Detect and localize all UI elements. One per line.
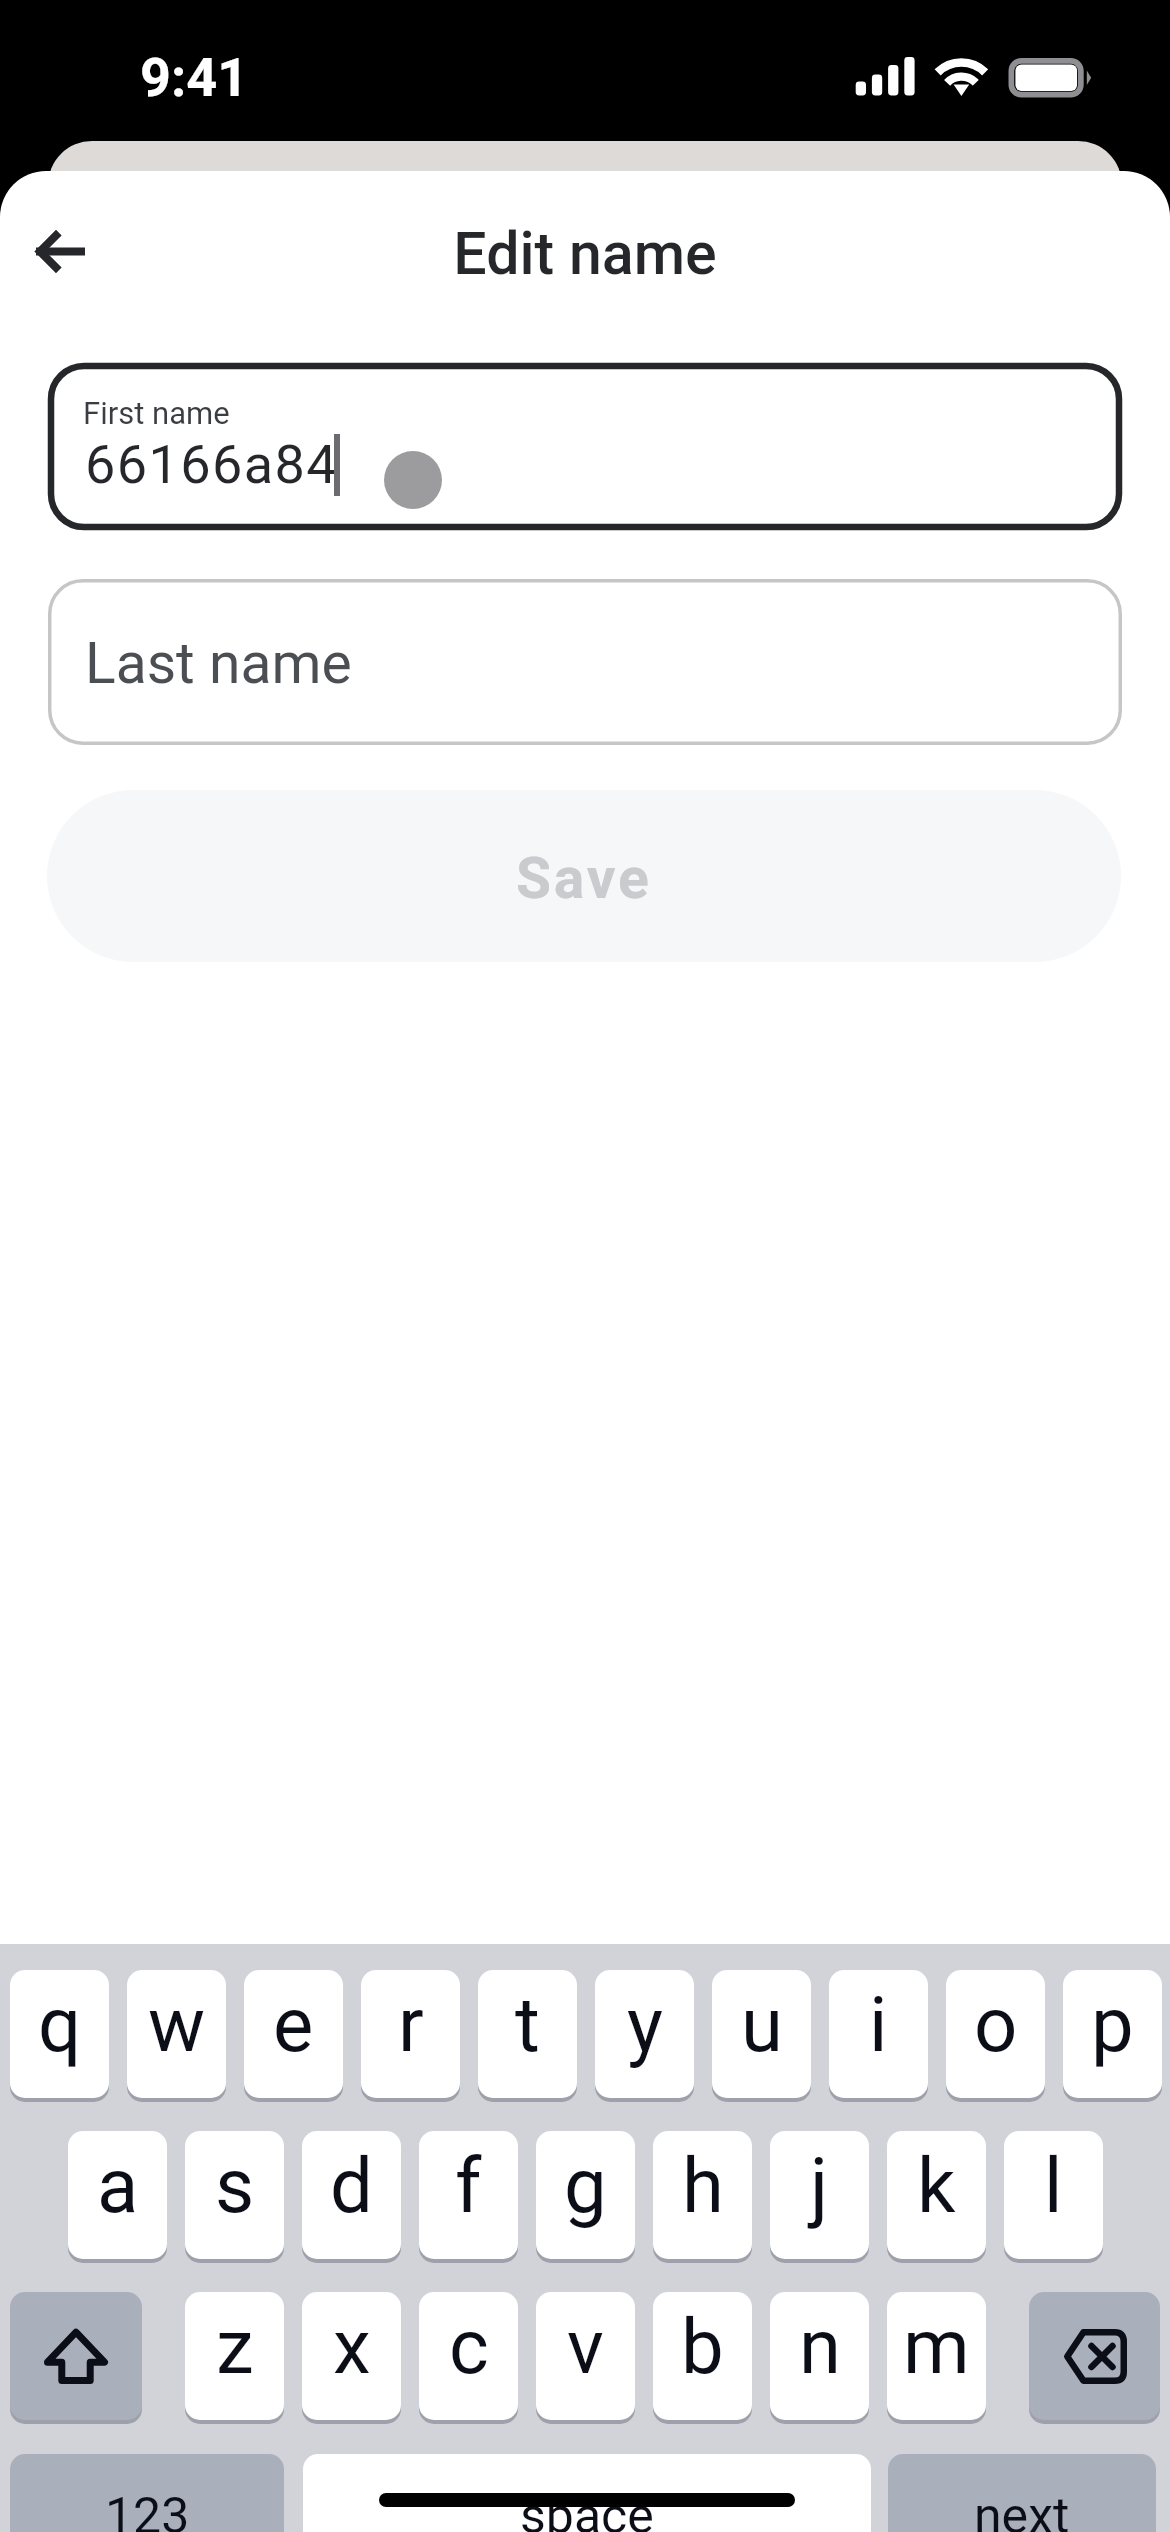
button[interactable]: s [185, 2131, 284, 2259]
button[interactable]: Shift [10, 2292, 142, 2420]
button[interactable]: c [419, 2292, 518, 2420]
staticText: Edit name [453, 219, 717, 285]
button[interactable]: m [887, 2292, 986, 2420]
button[interactable]: z [185, 2292, 284, 2420]
staticText: space [520, 2487, 654, 2532]
button[interactable]: r [361, 1970, 460, 2098]
button[interactable]: w [127, 1970, 226, 2098]
staticText: 123 [105, 2487, 190, 2532]
staticText: d [330, 2141, 373, 2230]
button[interactable]: k [887, 2131, 986, 2259]
staticText: a [97, 2141, 139, 2230]
button[interactable]: o [946, 1970, 1045, 2098]
staticText: t [515, 1980, 540, 2069]
button[interactable]: First name [48, 363, 1122, 530]
button[interactable]: u [712, 1970, 811, 2098]
button[interactable]: n [770, 2292, 869, 2420]
button[interactable]: Backspace [1029, 2292, 1160, 2420]
button[interactable]: Last name [48, 579, 1122, 745]
staticText: k [917, 2141, 956, 2230]
button[interactable]: space [303, 2454, 871, 2532]
staticText: n [799, 2302, 841, 2391]
staticText: v [567, 2302, 604, 2391]
staticText: p [1091, 1980, 1134, 2069]
staticText: l [1044, 2141, 1063, 2230]
staticText: r [398, 1980, 424, 2069]
staticText: s [215, 2141, 255, 2230]
button[interactable]: t [478, 1970, 577, 2098]
button[interactable]: f [419, 2131, 518, 2259]
staticText: e [273, 1980, 314, 2069]
staticText: next [974, 2487, 1070, 2532]
button[interactable]: q [10, 1970, 109, 2098]
staticText: Last name [85, 630, 352, 697]
other: Backspace [1062, 2329, 1127, 2384]
button[interactable]: Save [47, 790, 1121, 962]
button[interactable]: d [302, 2131, 401, 2259]
button[interactable]: b [653, 2292, 752, 2420]
button[interactable]: g [536, 2131, 635, 2259]
staticText: q [38, 1980, 82, 2069]
staticText: c [449, 2302, 489, 2391]
staticText: o [974, 1980, 1018, 2069]
staticText: z [216, 2302, 254, 2391]
staticText: u [741, 1980, 783, 2069]
staticText: First name [83, 395, 230, 431]
button[interactable]: e [244, 1970, 343, 2098]
button[interactable]: x [302, 2292, 401, 2420]
staticText: w [148, 1980, 206, 2069]
button[interactable]: 123 [10, 2454, 284, 2532]
staticText: x [333, 2302, 371, 2391]
button[interactable]: l [1004, 2131, 1103, 2259]
button[interactable]: next [888, 2454, 1156, 2532]
button[interactable]: v [536, 2292, 635, 2420]
staticText: Save [516, 845, 652, 912]
button[interactable]: p [1063, 1970, 1162, 2098]
staticText: i [869, 1980, 888, 2069]
button[interactable]: i [829, 1970, 928, 2098]
staticText: g [564, 2141, 607, 2230]
button[interactable]: h [653, 2131, 752, 2259]
staticText: f [455, 2141, 482, 2230]
staticText: j [810, 2141, 829, 2230]
staticText: 66166a84 [85, 433, 339, 496]
button[interactable]: a [68, 2131, 167, 2259]
staticText: y [627, 1980, 663, 2069]
staticText: m [903, 2302, 970, 2391]
button[interactable]: Back [17, 208, 103, 294]
button[interactable]: j [770, 2131, 869, 2259]
other: Shift [44, 2328, 108, 2384]
staticText: 9:41 [140, 46, 249, 109]
staticText: b [681, 2302, 724, 2391]
staticText: h [682, 2141, 724, 2230]
button[interactable]: y [595, 1970, 694, 2098]
